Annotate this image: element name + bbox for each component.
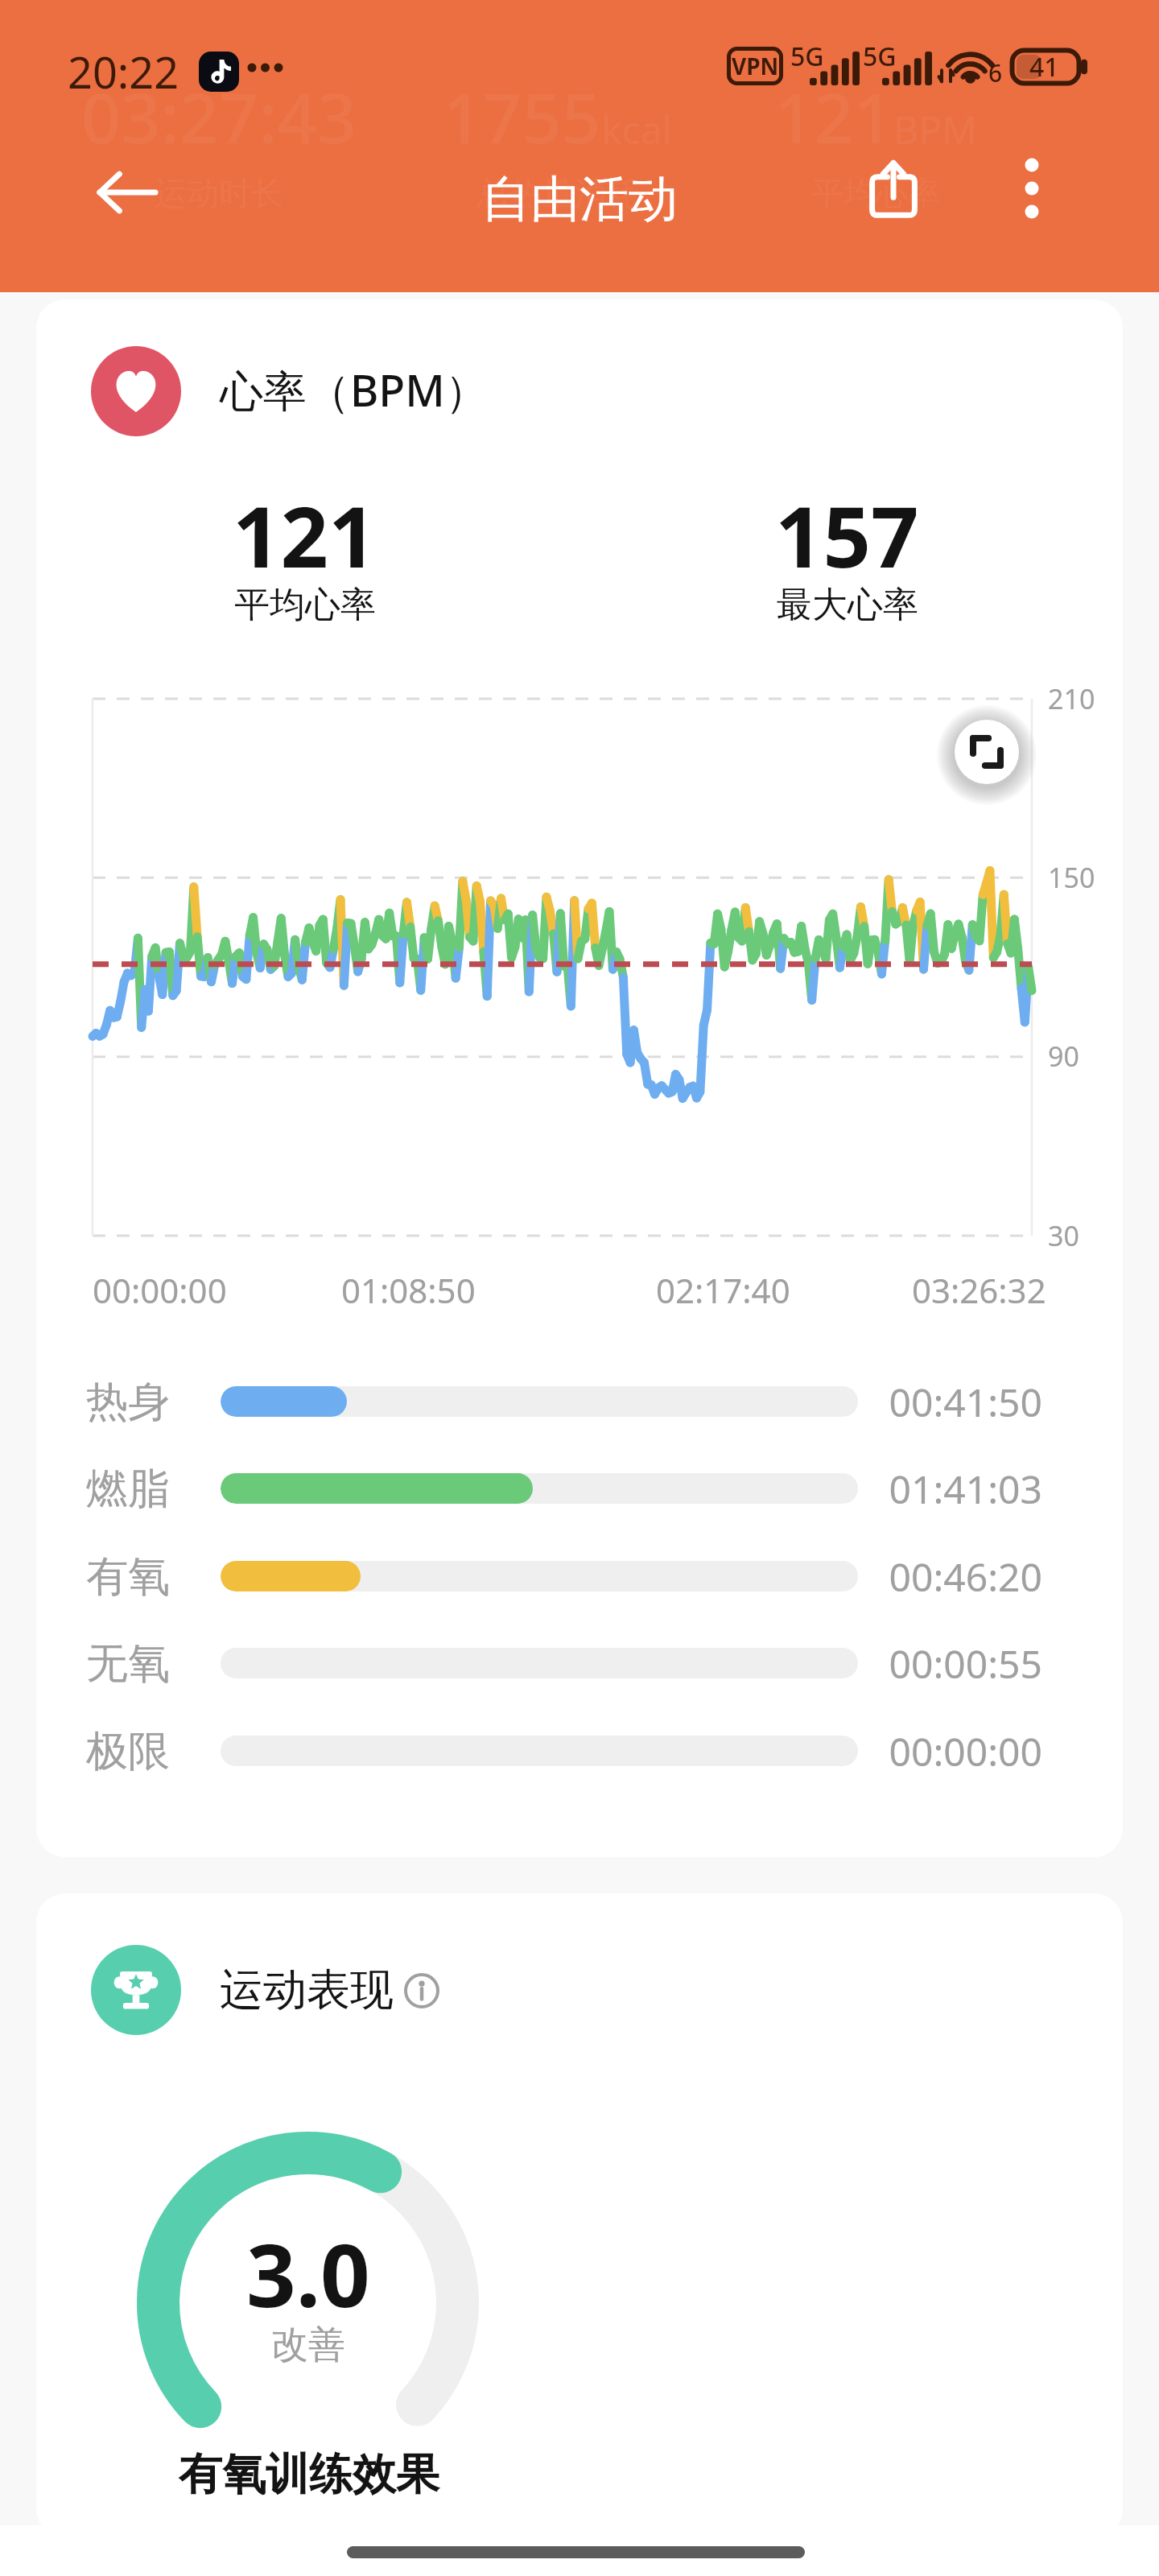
button[interactable]: Expand chart	[955, 720, 1019, 784]
staticText: 41	[1029, 49, 1059, 85]
staticText: 01:08:50	[341, 1267, 476, 1313]
staticText: 150	[1048, 859, 1095, 896]
staticText: 121	[774, 69, 893, 163]
staticText: 3.0	[246, 2215, 370, 2333]
staticText: 热身	[86, 1376, 170, 1429]
staticText: 平均心率	[234, 583, 376, 627]
staticText: 90	[1048, 1038, 1079, 1075]
staticText: 157	[775, 478, 919, 592]
staticText: 有氧	[86, 1550, 170, 1604]
button[interactable]: Back	[80, 146, 174, 239]
staticText: 00:00:00	[93, 1267, 227, 1313]
staticText: 00:00:55	[889, 1637, 1042, 1690]
staticText: 00:41:50	[889, 1376, 1042, 1428]
staticText: 03:26:32	[912, 1267, 1046, 1313]
staticText: 6	[988, 56, 1003, 89]
staticText: 03:27:43	[81, 69, 357, 163]
staticText: 运动表现	[220, 1963, 394, 2017]
button[interactable]: 运动表现	[36, 1893, 1123, 2537]
staticText: 00:46:20	[889, 1550, 1042, 1603]
staticText: 极限	[86, 1725, 170, 1778]
staticText: 心率（BPM）	[220, 360, 489, 419]
button[interactable]: Info	[398, 1967, 446, 2015]
staticText: 改善	[271, 2322, 345, 2368]
staticText: 自由活动	[481, 168, 678, 230]
staticText: 121	[233, 478, 377, 592]
button[interactable]: Share	[847, 142, 940, 235]
staticText: 运动时长	[155, 173, 283, 213]
staticText: 5G	[863, 39, 897, 74]
staticText: 总热量消耗	[477, 173, 638, 213]
staticText: 有氧训练效果	[179, 2447, 439, 2502]
button[interactable]: 心率（BPM）	[36, 299, 1123, 1857]
staticText: 无氧	[86, 1637, 170, 1690]
staticText: 平均心率	[811, 173, 940, 213]
staticText: 燃脂	[86, 1463, 170, 1516]
staticText: 210	[1048, 680, 1095, 717]
staticText: 最大心率	[777, 583, 918, 627]
staticText: 5G	[790, 39, 824, 74]
staticText: 00:00:00	[889, 1725, 1042, 1777]
staticText: VPN	[732, 51, 779, 81]
staticText: 30	[1048, 1217, 1079, 1254]
staticText: 20:22	[68, 42, 179, 101]
staticText: 02:17:40	[656, 1267, 790, 1313]
staticText: 01:41:03	[889, 1463, 1042, 1515]
button[interactable]: More options	[985, 142, 1079, 235]
